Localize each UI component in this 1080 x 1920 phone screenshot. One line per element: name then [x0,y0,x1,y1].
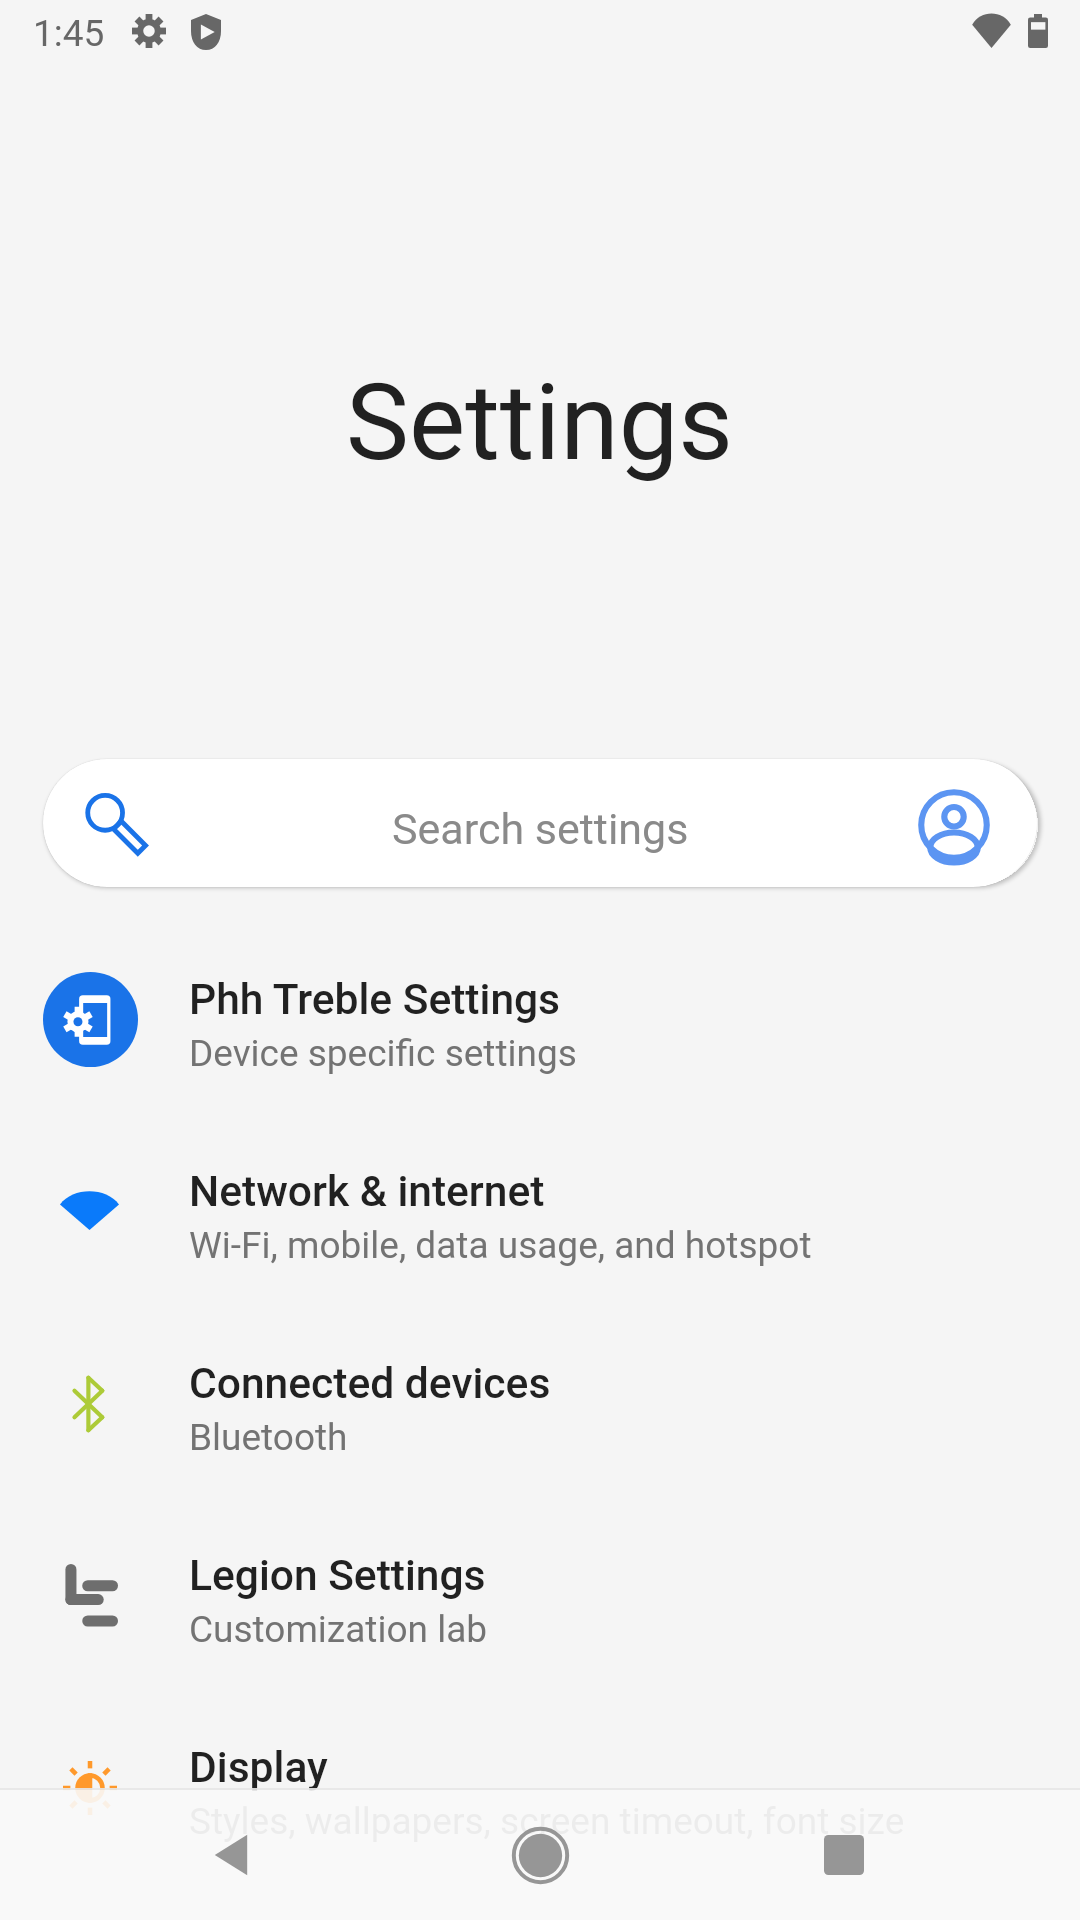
button[interactable]: Recents [784,1795,904,1915]
button[interactable]: Connected devices [0,1313,1080,1505]
button[interactable]: Display [0,1697,1080,1889]
button[interactable]: Legion Settings [0,1505,1080,1697]
staticText: Bluetooth [189,1416,348,1459]
staticText: Network & internet [189,1167,545,1217]
staticText: Customization lab [189,1608,488,1651]
button[interactable]: Phh Treble Settings [0,929,1080,1121]
staticText: Legion Settings [189,1551,486,1601]
button[interactable]: Account [915,784,993,862]
button[interactable]: Search settings [43,759,1037,887]
staticText: Connected devices [189,1359,551,1409]
staticText: Search settings [392,804,689,854]
staticText: 1:45 [33,12,105,55]
staticText: Phh Treble Settings [189,975,561,1025]
staticText: Styles, wallpapers, screen timeout, font… [189,1800,905,1843]
button[interactable]: Home [480,1795,600,1915]
staticText: Device specific settings [189,1032,577,1075]
button[interactable]: Network & internet [0,1121,1080,1313]
staticText: Wi-Fi, mobile, data usage, and hotspot [189,1224,812,1267]
staticText: Settings [346,361,734,485]
button[interactable]: Back [172,1795,292,1915]
staticText: Display [189,1743,328,1793]
button[interactable]: Search [83,791,147,855]
